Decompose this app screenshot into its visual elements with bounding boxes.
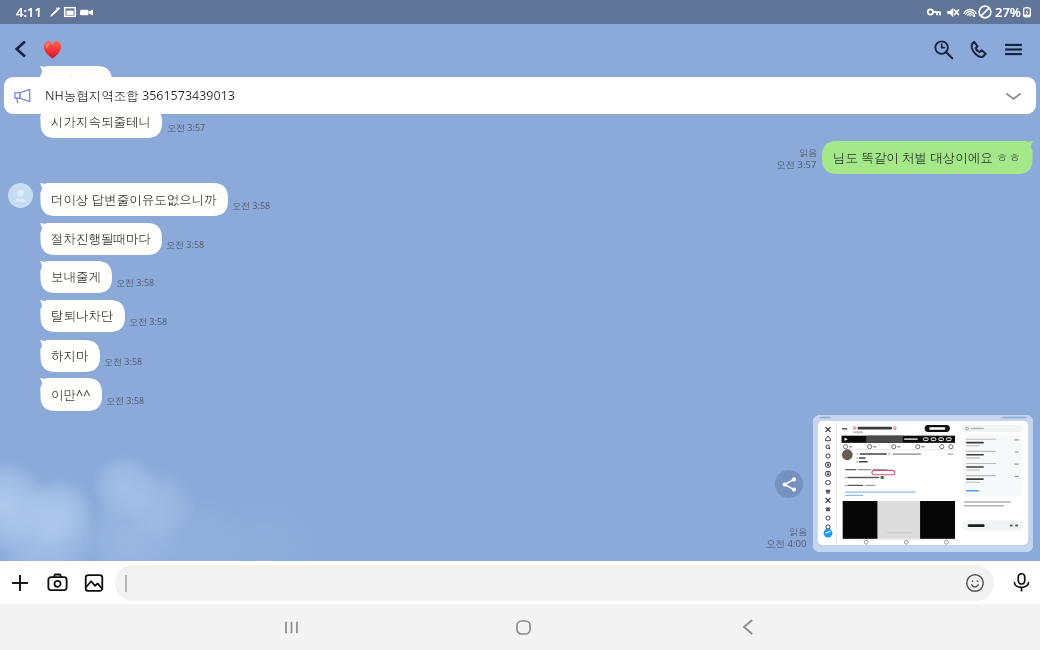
button[interactable]: Gallery bbox=[76, 561, 112, 604]
button[interactable]: 탈퇴나차단 bbox=[40, 300, 125, 332]
staticText: 보내줄게 bbox=[51, 269, 101, 285]
staticText: 탈퇴나차단 bbox=[51, 308, 114, 324]
button[interactable]: Call bbox=[961, 27, 996, 71]
button[interactable]: 피해매는 bbox=[40, 66, 112, 98]
button[interactable]: 님도 똑같이 처벌 대상이에요 ㅎㅎ bbox=[822, 141, 1033, 174]
staticText: 더이상 답변줄이유도없으니까 bbox=[51, 191, 217, 208]
staticText: 4:11 bbox=[16, 3, 42, 21]
staticText: 오전 3:58 bbox=[106, 394, 145, 406]
button[interactable]: NH농협지역조합 3561573439013 bbox=[4, 77, 1036, 114]
button[interactable]: 보내줄게 bbox=[40, 261, 112, 293]
staticText: 오전 3:57 bbox=[776, 158, 817, 171]
staticText: 이만^^ bbox=[51, 386, 91, 403]
button[interactable]: Emoji bbox=[964, 572, 986, 594]
button[interactable]: 이만^^ bbox=[40, 378, 102, 411]
staticText: 오전 3:58 bbox=[166, 238, 205, 250]
staticText: NH농협지역조합 3561573439013 bbox=[45, 87, 235, 104]
staticText: 오전 3:58 bbox=[104, 355, 143, 367]
staticText: 27% bbox=[995, 3, 1021, 21]
button[interactable]: Back bbox=[716, 604, 780, 650]
button[interactable]: Camera bbox=[39, 561, 76, 604]
staticText: 읽음 bbox=[789, 526, 807, 537]
staticText: 오전 3:58 bbox=[232, 199, 271, 211]
button[interactable]: 절차진행될때마다 bbox=[40, 223, 162, 255]
button[interactable]: Menu bbox=[996, 27, 1031, 71]
button[interactable]: Back bbox=[0, 27, 42, 71]
button[interactable]: Recents bbox=[259, 604, 323, 650]
staticText: 절차진행될때마다 bbox=[51, 231, 151, 247]
button[interactable]: 하지마 bbox=[40, 340, 100, 372]
button[interactable]: Share bbox=[775, 470, 803, 498]
button[interactable] bbox=[42, 27, 63, 71]
button[interactable]: Add bbox=[0, 561, 39, 604]
staticText: 오전 3:58 bbox=[129, 315, 168, 327]
button[interactable]: Search bbox=[925, 27, 961, 71]
button[interactable]: Profile bbox=[8, 183, 33, 208]
staticText: 하지마 bbox=[51, 348, 89, 364]
button[interactable]: 더이상 답변줄이유도없으니까 bbox=[40, 183, 228, 216]
button[interactable]: Emoji bbox=[115, 565, 994, 601]
staticText: 오전 3:58 bbox=[116, 276, 155, 288]
button[interactable]: 시가지속되줄테니 bbox=[40, 106, 162, 138]
button[interactable]: Home bbox=[491, 604, 555, 650]
staticText: 오전 4:00 bbox=[766, 537, 807, 550]
staticText: 시가지속되줄테니 bbox=[51, 114, 151, 130]
staticText: 읽음 bbox=[799, 147, 817, 158]
staticText: 님도 똑같이 처벌 대상이에요 ㅎㅎ bbox=[833, 149, 1022, 166]
staticText: 오전 3:57 bbox=[167, 121, 206, 133]
button[interactable]: Voice bbox=[1002, 561, 1040, 604]
button[interactable]: Photo bbox=[813, 415, 1033, 552]
